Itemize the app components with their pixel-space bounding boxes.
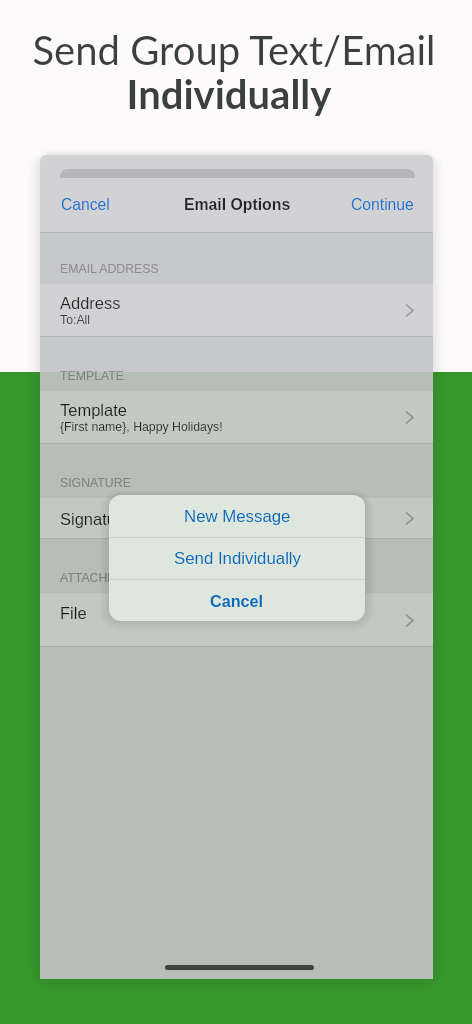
staticText: Template (60, 401, 127, 419)
staticText: SIGNATURE (60, 476, 131, 490)
staticText: Send Individually (174, 549, 301, 568)
button[interactable]: Signature (40, 498, 433, 539)
button[interactable]: Template (40, 391, 433, 444)
button[interactable]: Send Individually (109, 538, 365, 579)
staticText: Email Options (184, 196, 291, 214)
staticText: EMAIL ADDRESS (60, 262, 159, 276)
staticText: File (60, 604, 87, 622)
staticText: Individually (0, 70, 465, 118)
staticText: ATTACHMENT (60, 571, 143, 585)
staticText: New Message (184, 507, 291, 526)
button[interactable]: New Message (109, 495, 365, 537)
button[interactable]: File (40, 593, 433, 647)
staticText: Signature (60, 510, 131, 528)
staticText: Address (60, 294, 121, 312)
staticText: TEMPLATE (60, 369, 124, 383)
staticText: Cancel (210, 592, 264, 610)
button[interactable]: Cancel (109, 580, 365, 621)
staticText: Cancel (61, 196, 110, 214)
staticText: To:All (60, 313, 91, 327)
staticText: {First name}, Happy Holidays! (60, 420, 223, 434)
staticText: Send Group Text/Email (0, 26, 470, 74)
button[interactable]: Continue (335, 182, 433, 228)
button[interactable]: Address (40, 284, 433, 337)
staticText: Continue (351, 196, 414, 214)
button[interactable]: Cancel (40, 182, 126, 228)
